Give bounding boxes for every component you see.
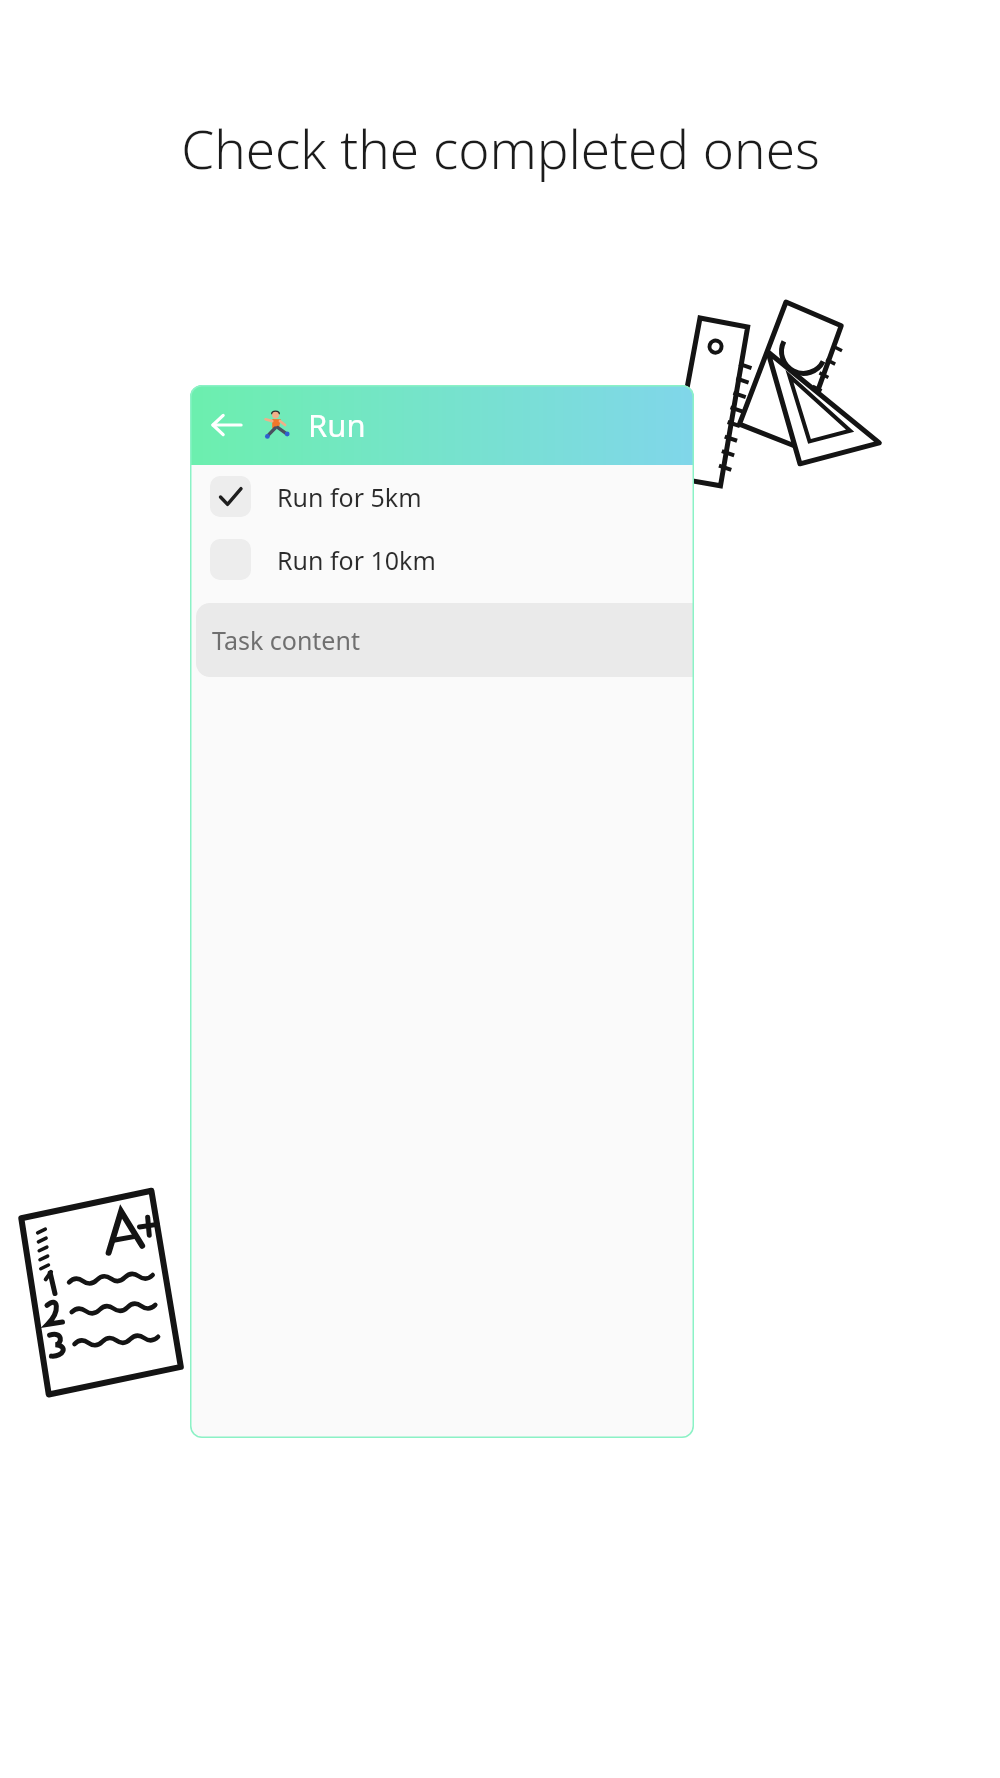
button[interactable]: Back: [200, 398, 254, 452]
staticText: Run for 5km: [277, 480, 422, 514]
button[interactable]: Run for 5km: [190, 465, 694, 528]
button[interactable]: Task content: [196, 603, 694, 677]
staticText: Task content: [212, 623, 360, 657]
button[interactable]: Run for 10km: [190, 528, 694, 591]
staticText: Run: [308, 404, 366, 446]
staticText: Check the completed ones: [181, 112, 820, 184]
staticText: Run for 10km: [277, 543, 436, 577]
